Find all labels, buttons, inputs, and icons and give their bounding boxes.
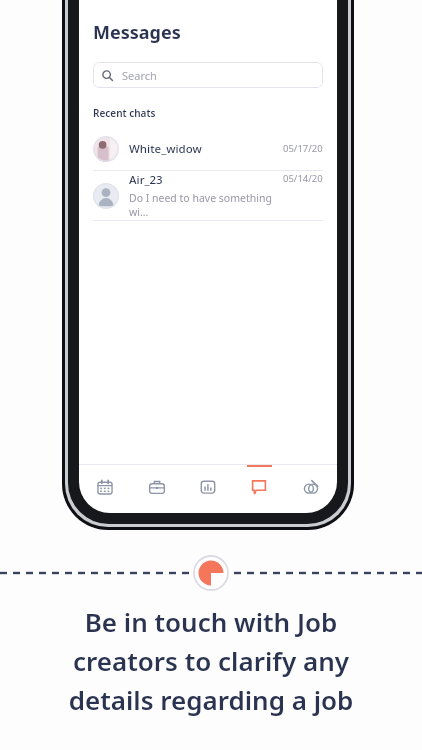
staticText: Recent chats	[93, 106, 156, 120]
staticText: Do I need to have something wi...	[129, 191, 283, 219]
button[interactable]: White_widow	[79, 127, 337, 170]
button[interactable]: Jobs	[132, 465, 182, 509]
button[interactable]: Calendar	[80, 465, 130, 509]
button[interactable]: Messages	[234, 465, 284, 509]
staticText: 05/17/20	[283, 142, 323, 155]
staticText: Messages	[93, 20, 181, 45]
button[interactable]: Search	[93, 62, 323, 88]
button[interactable]: Statistics	[183, 465, 233, 509]
staticText: White_widow	[129, 141, 202, 157]
button[interactable]: Air_23	[79, 171, 337, 220]
staticText: Search	[122, 68, 157, 83]
button[interactable]: Profile	[286, 465, 336, 509]
staticText: Be in touch with Job creators to clarify…	[0, 604, 422, 717]
staticText: Air_23	[129, 172, 163, 188]
staticText: 05/14/20	[283, 172, 323, 185]
